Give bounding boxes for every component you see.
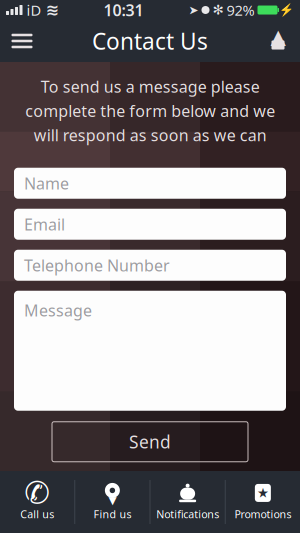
staticText: Contact Us — [92, 26, 208, 56]
staticText: Send — [129, 430, 171, 453]
button[interactable]: Name — [14, 168, 286, 199]
staticText: Promotions — [234, 507, 291, 521]
staticText: Telephone Number — [24, 255, 170, 276]
button[interactable]: ▼ — [75, 471, 149, 533]
button[interactable]: Notifications — [150, 471, 225, 533]
staticText: iD — [26, 0, 41, 20]
staticText: Name — [24, 173, 69, 194]
staticText: ▲ — [270, 25, 285, 48]
button[interactable]: ✆ — [0, 471, 74, 533]
staticText: ⚡ — [279, 3, 294, 17]
button[interactable]: Message — [14, 291, 286, 411]
staticText: ✻ — [212, 2, 223, 17]
staticText: ➤ — [188, 3, 198, 17]
button[interactable]: Telephone Number — [14, 250, 286, 281]
staticText: Notifications — [156, 507, 219, 521]
button[interactable]: Menu — [0, 20, 44, 62]
button[interactable]: Send — [52, 422, 248, 462]
button[interactable]: ★ — [226, 471, 300, 533]
button[interactable]: Email — [14, 209, 286, 240]
staticText: ≋ — [45, 1, 58, 19]
staticText: Email — [24, 214, 65, 235]
staticText: To send us a message please complete the… — [25, 76, 275, 146]
button[interactable]: Home — [256, 20, 300, 62]
staticText: Find us — [93, 507, 131, 521]
staticText: ✆ — [24, 475, 50, 510]
staticText: 92% — [226, 0, 254, 20]
staticText: Call us — [20, 507, 54, 521]
staticText: ▼ — [108, 494, 116, 506]
staticText: Message — [24, 300, 92, 321]
staticText: 10:31 — [103, 0, 143, 21]
staticText: ★ — [257, 485, 269, 500]
